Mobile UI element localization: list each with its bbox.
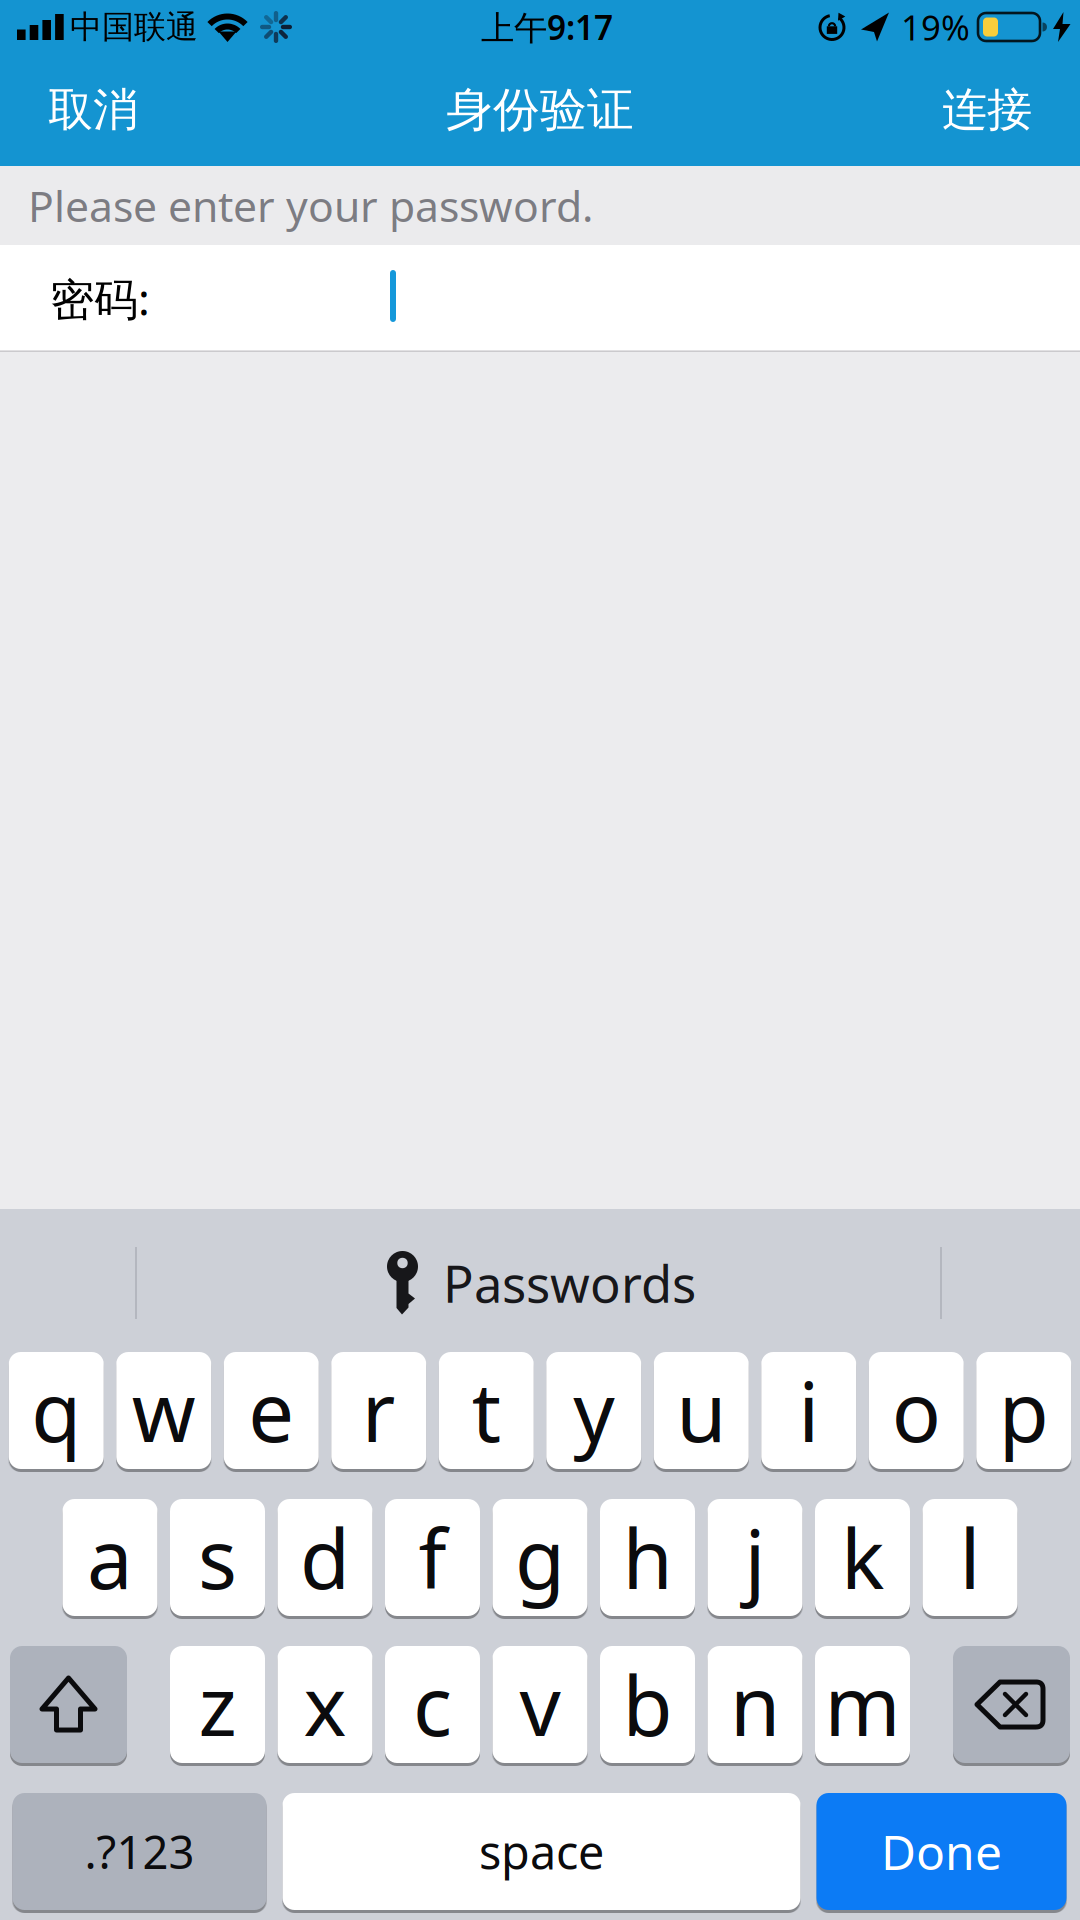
staticText: i bbox=[798, 1356, 819, 1464]
button[interactable]: c bbox=[385, 1646, 480, 1763]
staticText: l bbox=[959, 1503, 980, 1611]
staticText: 19% bbox=[901, 4, 970, 50]
button[interactable]: p bbox=[976, 1352, 1071, 1469]
staticText: t bbox=[472, 1356, 501, 1464]
staticText: g bbox=[515, 1503, 565, 1611]
button[interactable]: m bbox=[815, 1646, 910, 1763]
button[interactable] bbox=[10, 1646, 127, 1763]
button[interactable]: l bbox=[922, 1499, 1017, 1616]
button[interactable]: o bbox=[869, 1352, 964, 1469]
button[interactable]: w bbox=[116, 1352, 211, 1469]
button[interactable]: space bbox=[282, 1793, 800, 1910]
staticText: y bbox=[573, 1356, 614, 1464]
staticText: q bbox=[31, 1356, 81, 1464]
button[interactable]: u bbox=[654, 1352, 749, 1469]
button[interactable]: j bbox=[707, 1499, 802, 1616]
staticText: 身份验证 bbox=[446, 81, 634, 139]
staticText: space bbox=[479, 1820, 604, 1882]
button[interactable]: n bbox=[707, 1646, 802, 1763]
button[interactable]: h bbox=[600, 1499, 695, 1616]
staticText: j bbox=[744, 1503, 765, 1611]
staticText: h bbox=[622, 1503, 672, 1611]
button[interactable]: f bbox=[385, 1499, 480, 1616]
button[interactable]: k bbox=[815, 1499, 910, 1616]
button[interactable] bbox=[953, 1646, 1070, 1763]
button[interactable]: Passwords bbox=[384, 1249, 696, 1317]
button[interactable]: z bbox=[170, 1646, 265, 1763]
button[interactable]: Done bbox=[816, 1793, 1066, 1910]
button[interactable]: .?123 bbox=[12, 1793, 266, 1910]
staticText: u bbox=[676, 1356, 726, 1464]
staticText: d bbox=[300, 1503, 350, 1611]
staticText: v bbox=[519, 1650, 560, 1758]
button[interactable]: r bbox=[331, 1352, 426, 1469]
button[interactable]: q bbox=[9, 1352, 104, 1469]
staticText: w bbox=[132, 1356, 196, 1464]
staticText: 中国联通 bbox=[70, 7, 198, 47]
button[interactable]: y bbox=[546, 1352, 641, 1469]
staticText: b bbox=[622, 1650, 672, 1758]
staticText: Done bbox=[881, 1820, 1002, 1883]
button[interactable]: b bbox=[600, 1646, 695, 1763]
staticText: k bbox=[841, 1503, 884, 1611]
staticText: a bbox=[87, 1503, 133, 1611]
staticText: 连接 bbox=[942, 82, 1032, 138]
button[interactable]: d bbox=[277, 1499, 372, 1616]
button[interactable]: 密码: bbox=[0, 245, 1080, 352]
button[interactable]: 取消 bbox=[48, 82, 138, 138]
staticText: p bbox=[999, 1356, 1049, 1464]
staticText: f bbox=[418, 1503, 446, 1611]
button[interactable]: e bbox=[224, 1352, 319, 1469]
button[interactable]: g bbox=[492, 1499, 587, 1616]
staticText: n bbox=[730, 1650, 780, 1758]
button[interactable]: 连接 bbox=[942, 82, 1032, 138]
button[interactable]: x bbox=[277, 1646, 372, 1763]
staticText: z bbox=[198, 1650, 236, 1758]
staticText: .?123 bbox=[84, 1821, 194, 1882]
staticText: s bbox=[198, 1503, 237, 1611]
button[interactable]: t bbox=[439, 1352, 534, 1469]
staticText: o bbox=[892, 1356, 941, 1464]
staticText: 上午9:17 bbox=[481, 5, 613, 49]
staticText: 取消 bbox=[48, 82, 138, 138]
staticText: m bbox=[824, 1650, 900, 1758]
staticText: e bbox=[248, 1356, 294, 1464]
button[interactable]: i bbox=[761, 1352, 856, 1469]
button[interactable]: s bbox=[170, 1499, 265, 1616]
staticText: 密码: bbox=[50, 269, 150, 328]
button[interactable]: v bbox=[492, 1646, 587, 1763]
staticText: Please enter your password. bbox=[28, 177, 593, 234]
staticText: c bbox=[413, 1650, 452, 1758]
button[interactable]: a bbox=[62, 1499, 157, 1616]
staticText: x bbox=[303, 1650, 346, 1758]
staticText: Passwords bbox=[443, 1249, 696, 1317]
staticText: r bbox=[362, 1356, 396, 1464]
